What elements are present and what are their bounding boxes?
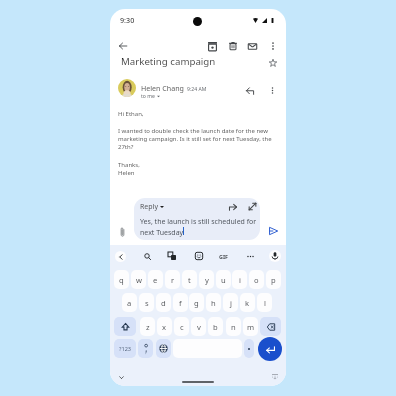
button[interactable]: Mark unread bbox=[244, 38, 260, 54]
button[interactable]: q bbox=[114, 270, 129, 289]
button[interactable]: r bbox=[165, 270, 180, 289]
button[interactable]: k bbox=[240, 293, 255, 312]
button[interactable]: Previous bbox=[115, 251, 126, 262]
button[interactable]: Delete bbox=[225, 38, 241, 54]
staticText: b bbox=[213, 322, 218, 332]
staticText: y bbox=[205, 275, 209, 285]
staticText: d bbox=[161, 298, 166, 308]
staticText: 9:24 AM bbox=[187, 86, 207, 93]
staticText: t bbox=[188, 275, 191, 285]
button[interactable]: j bbox=[223, 293, 238, 312]
button[interactable]: e bbox=[148, 270, 163, 289]
button[interactable]: i bbox=[232, 270, 247, 289]
button[interactable]: a bbox=[122, 293, 137, 312]
staticText: Reply bbox=[140, 202, 158, 212]
staticText: Helen Chang bbox=[141, 83, 184, 93]
button[interactable]: p bbox=[266, 270, 281, 289]
staticText: u bbox=[221, 275, 226, 285]
staticText: GIF bbox=[219, 253, 228, 260]
button[interactable]: Marketing campaign bbox=[121, 55, 216, 68]
staticText: w bbox=[136, 275, 142, 285]
staticText: m bbox=[247, 322, 255, 332]
staticText: h bbox=[211, 298, 216, 308]
staticText: 9:30 bbox=[120, 15, 135, 25]
staticText: a bbox=[127, 298, 132, 308]
button[interactable]: Translate bbox=[166, 250, 178, 262]
button[interactable]: Send bbox=[265, 223, 281, 239]
button[interactable]: Numbers bbox=[114, 339, 136, 358]
button[interactable]: Keyboard settings bbox=[269, 370, 281, 382]
button[interactable]: Forward bbox=[227, 201, 238, 212]
button[interactable]: h bbox=[206, 293, 221, 312]
staticText: i bbox=[239, 275, 241, 285]
button[interactable]: m bbox=[243, 317, 258, 336]
button[interactable]: Voice input bbox=[269, 250, 281, 262]
staticText: Hi Ethan, bbox=[118, 110, 144, 118]
staticText: ?123 bbox=[119, 345, 132, 353]
staticText: n bbox=[231, 322, 236, 332]
button[interactable]: o bbox=[249, 270, 264, 289]
button[interactable]: Emoji bbox=[138, 339, 153, 358]
staticText: c bbox=[180, 322, 184, 332]
button[interactable]: to me bbox=[141, 93, 160, 100]
button[interactable]: Stickers bbox=[193, 250, 205, 262]
button[interactable]: t bbox=[182, 270, 197, 289]
button[interactable]: Language bbox=[156, 339, 171, 358]
button[interactable]: z bbox=[140, 317, 155, 336]
staticText: Helen bbox=[118, 169, 135, 177]
staticText: e bbox=[153, 275, 158, 285]
staticText: o bbox=[254, 275, 259, 285]
button[interactable]: x bbox=[157, 317, 172, 336]
staticText: z bbox=[146, 322, 150, 332]
button[interactable]: Hide keyboard bbox=[115, 371, 127, 383]
button[interactable]: Enter bbox=[258, 337, 282, 361]
button[interactable]: Period bbox=[244, 339, 254, 358]
staticText: g bbox=[194, 298, 199, 308]
button[interactable]: b bbox=[208, 317, 223, 336]
staticText: f bbox=[179, 298, 182, 308]
button[interactable]: c bbox=[174, 317, 189, 336]
staticText: k bbox=[245, 298, 250, 308]
button[interactable]: Expand bbox=[247, 201, 258, 212]
button[interactable]: More options bbox=[266, 84, 279, 97]
staticText: to me bbox=[141, 93, 155, 100]
button[interactable]: Shift bbox=[114, 317, 136, 336]
button[interactable]: Reply bbox=[243, 84, 257, 98]
staticText: Yes, the launch is still scheduled for n… bbox=[140, 217, 260, 237]
staticText: Marketing campaign bbox=[121, 55, 216, 68]
button[interactable]: Attach file bbox=[115, 225, 129, 239]
button[interactable]: Star bbox=[266, 56, 280, 70]
button[interactable]: More options bbox=[266, 39, 280, 53]
staticText: j bbox=[230, 298, 232, 308]
staticText: p bbox=[271, 275, 276, 285]
staticText: Thanks, bbox=[118, 161, 140, 169]
button[interactable]: More bbox=[244, 250, 256, 262]
staticText: v bbox=[197, 322, 201, 332]
button[interactable]: y bbox=[199, 270, 214, 289]
button[interactable]: Back bbox=[115, 38, 131, 54]
button[interactable]: w bbox=[131, 270, 146, 289]
button[interactable]: v bbox=[191, 317, 206, 336]
button[interactable]: u bbox=[216, 270, 231, 289]
button[interactable]: Backspace bbox=[260, 317, 281, 336]
staticText: I wanted to double check the launch date… bbox=[118, 127, 274, 151]
button[interactable]: Reply bbox=[140, 202, 164, 212]
staticText: x bbox=[162, 322, 167, 332]
staticText: l bbox=[264, 298, 266, 308]
button[interactable]: d bbox=[156, 293, 171, 312]
button[interactable]: GIF bbox=[217, 253, 229, 260]
button[interactable]: n bbox=[226, 317, 241, 336]
button[interactable]: l bbox=[257, 293, 272, 312]
button[interactable]: Archive bbox=[204, 38, 220, 54]
button[interactable]: g bbox=[189, 293, 204, 312]
button[interactable]: f bbox=[173, 293, 188, 312]
button[interactable]: s bbox=[139, 293, 154, 312]
staticText: s bbox=[145, 298, 149, 308]
staticText: r bbox=[171, 275, 175, 285]
button[interactable]: Search bbox=[141, 250, 153, 262]
staticText: q bbox=[119, 275, 124, 285]
